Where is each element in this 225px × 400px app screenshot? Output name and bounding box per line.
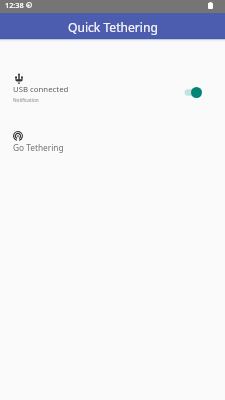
staticText: USB connected [13,84,69,95]
staticText: Go Tethering [13,142,64,153]
staticText: 12:38 [5,0,24,10]
button[interactable]: USB connected [0,66,225,108]
button[interactable]: USB tethering toggle [184,87,202,98]
staticText: Quick Tethering [68,19,158,35]
button[interactable]: Go Tethering [0,126,225,158]
staticText: Notification [13,97,39,103]
